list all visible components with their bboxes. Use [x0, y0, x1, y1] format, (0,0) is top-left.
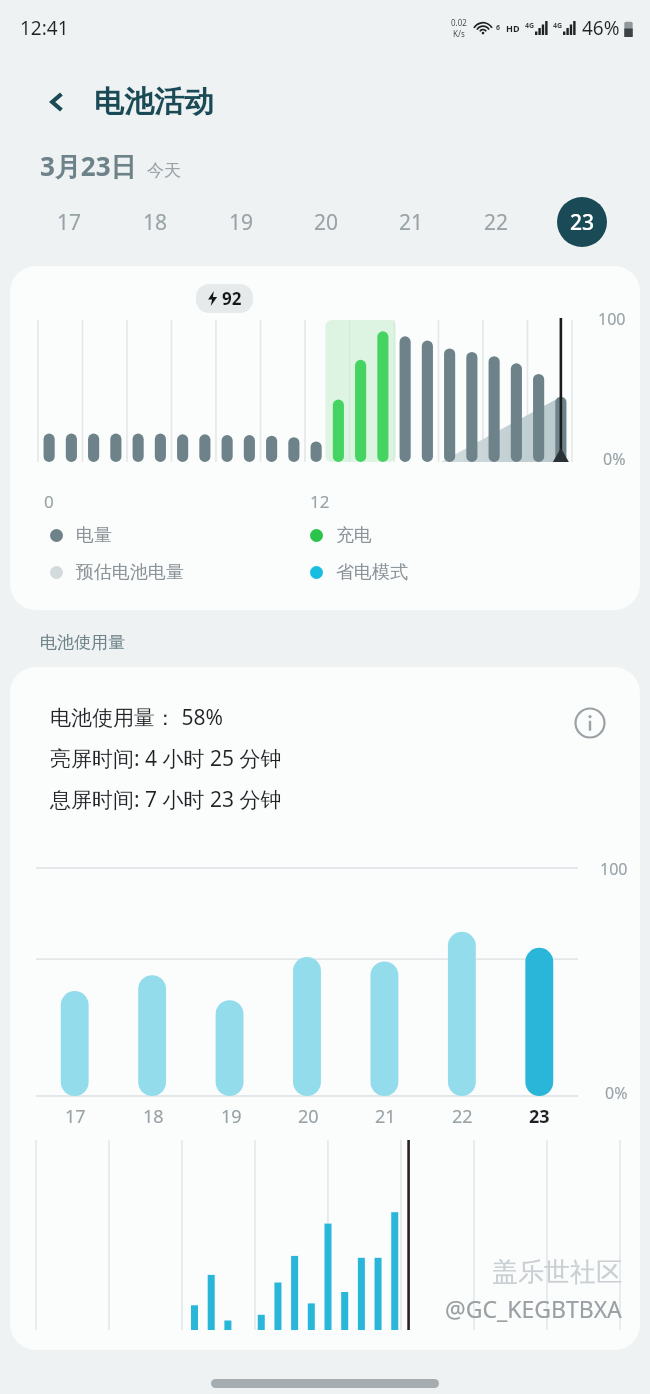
staticText: 充电	[336, 524, 372, 547]
staticText: 20	[298, 1104, 319, 1129]
staticText: 今天	[147, 160, 181, 181]
staticText: 100	[598, 308, 626, 330]
button[interactable]: 20	[284, 194, 369, 250]
staticText: 6	[496, 23, 501, 33]
staticText: 12:41	[20, 15, 69, 41]
staticText: 17	[57, 208, 82, 237]
staticText: 盖乐世社区	[492, 1256, 622, 1289]
staticText: 92	[222, 287, 242, 310]
staticText: 23	[529, 1104, 550, 1129]
staticText: 100	[600, 858, 628, 880]
staticText: 0%	[605, 1082, 628, 1104]
staticText: 省电模式	[336, 561, 408, 584]
button[interactable]: Info	[570, 703, 610, 743]
staticText: 21	[375, 1104, 396, 1129]
staticText: 电池使用量： 58%	[50, 703, 223, 732]
staticText: 17	[65, 1104, 86, 1129]
staticText: 0%	[603, 448, 626, 470]
button[interactable]: 19	[198, 194, 284, 250]
staticText: 12	[310, 490, 330, 513]
staticText: 19	[221, 1104, 242, 1129]
staticText: 18	[143, 1104, 164, 1129]
staticText: 0.02	[451, 17, 467, 28]
staticText: 23	[570, 208, 595, 237]
staticText: 22	[484, 208, 509, 237]
staticText: @GC_KEGBTBXA	[445, 1293, 622, 1324]
staticText: 19	[229, 208, 254, 237]
button[interactable]: 22	[454, 194, 539, 250]
staticText: 电量	[76, 524, 112, 547]
staticText: 4G	[525, 21, 535, 31]
staticText: 20	[314, 208, 339, 237]
button[interactable]: 21	[369, 194, 454, 250]
staticText: HD	[506, 22, 520, 34]
staticText: 电池使用量	[40, 632, 125, 653]
staticText: 18	[143, 208, 168, 237]
button[interactable]: 17	[26, 194, 112, 250]
staticText: 21	[399, 208, 424, 237]
staticText: 46%	[582, 15, 620, 41]
button[interactable]: 23	[539, 194, 624, 250]
staticText: 电池活动	[94, 83, 214, 121]
button[interactable]: Back	[34, 79, 80, 125]
staticText: K/s	[453, 28, 465, 39]
staticText: 4G	[553, 21, 563, 31]
staticText: 3月23日	[40, 148, 137, 184]
staticText: 0	[44, 490, 54, 513]
staticText: 22	[452, 1104, 473, 1129]
staticText: 预估电池电量	[76, 561, 184, 584]
staticText: 息屏时间: 7 小时 23 分钟	[50, 785, 282, 814]
staticText: 亮屏时间: 4 小时 25 分钟	[50, 744, 282, 773]
button[interactable]: 18	[112, 194, 198, 250]
